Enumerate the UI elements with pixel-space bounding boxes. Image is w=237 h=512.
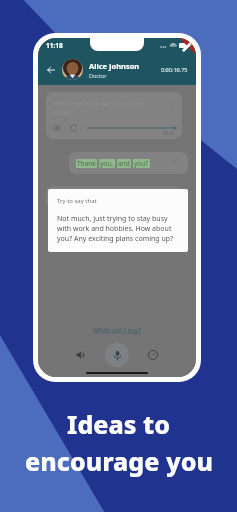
staticText: encourage you <box>25 444 213 478</box>
staticText: 0:00:10.75 <box>161 66 188 73</box>
button[interactable]: Speed <box>143 345 163 365</box>
staticText: you, <box>100 159 114 168</box>
staticText: 11:18 <box>46 41 63 50</box>
button[interactable]: Record <box>105 343 129 367</box>
staticText: you? <box>134 159 149 168</box>
staticText: and <box>118 159 130 168</box>
staticText: Doctor <box>89 72 107 79</box>
button[interactable]: What can I say? <box>90 323 145 338</box>
staticText: Ideas to <box>67 407 170 441</box>
staticText: Alice Johnson <box>89 61 140 71</box>
staticText: Thank <box>77 159 96 168</box>
staticText: Not much, just trying to stay busy with … <box>57 214 179 244</box>
button[interactable]: Speaker <box>71 345 91 365</box>
staticText: Try to say that <box>57 197 97 205</box>
button[interactable]: Back <box>44 63 58 77</box>
staticText: What can I say? <box>93 326 142 335</box>
staticText: 00:00 <box>163 130 175 136</box>
